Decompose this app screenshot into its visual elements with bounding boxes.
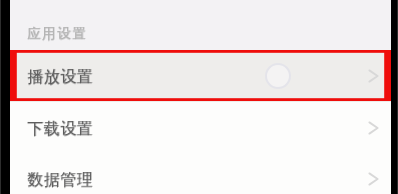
staticText: 应用设置	[27, 26, 88, 43]
staticText: 应用设置	[27, 25, 88, 42]
staticText: 数据管理	[27, 170, 93, 190]
staticText: 数据管理	[28, 170, 94, 190]
staticText: 播放设置	[27, 67, 93, 87]
staticText: 播放设置	[27, 68, 93, 88]
button[interactable]: 下载设置	[10, 102, 391, 154]
staticText: 下载设置	[27, 120, 93, 140]
staticText: 应用设置	[28, 25, 89, 42]
button[interactable]: 播放设置	[10, 50, 391, 102]
staticText: 下载设置	[27, 119, 93, 139]
button[interactable]: 数据管理	[10, 153, 391, 194]
staticText: 下载设置	[28, 119, 94, 139]
staticText: 播放设置	[28, 67, 94, 87]
other: Open 数据管理	[368, 172, 379, 186]
staticText: 数据管理	[27, 171, 93, 191]
other: Open 下载设置	[368, 121, 379, 135]
other: Open 播放设置	[368, 69, 379, 83]
other: Loading	[265, 63, 291, 89]
